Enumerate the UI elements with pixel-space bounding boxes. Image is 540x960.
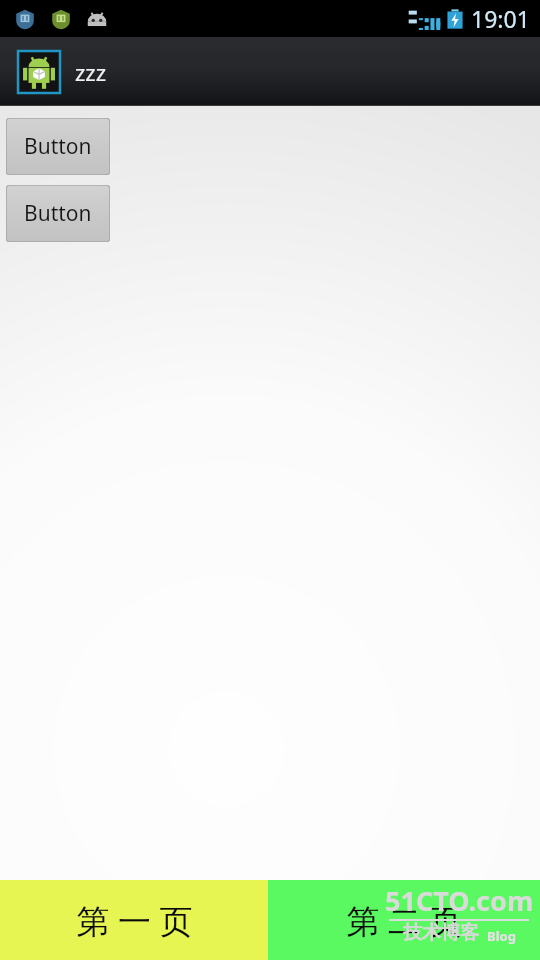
button[interactable]: Button bbox=[6, 118, 110, 175]
button[interactable]: 第 二 页 bbox=[268, 880, 540, 960]
staticText: Button bbox=[24, 199, 92, 228]
staticText: 技术博客 bbox=[403, 921, 479, 945]
button[interactable]: Button bbox=[6, 185, 110, 242]
staticText: 19:01 bbox=[471, 3, 530, 34]
staticText: Blog bbox=[487, 927, 516, 945]
staticText: zzz bbox=[75, 57, 107, 87]
staticText: 51CTO.com bbox=[385, 882, 534, 919]
button[interactable]: App icon bbox=[18, 51, 60, 93]
staticText: 第 一 页 bbox=[76, 898, 193, 943]
button[interactable]: 第 一 页 bbox=[0, 880, 268, 960]
staticText: 第 二 页 bbox=[346, 898, 463, 943]
staticText: Button bbox=[24, 132, 92, 161]
